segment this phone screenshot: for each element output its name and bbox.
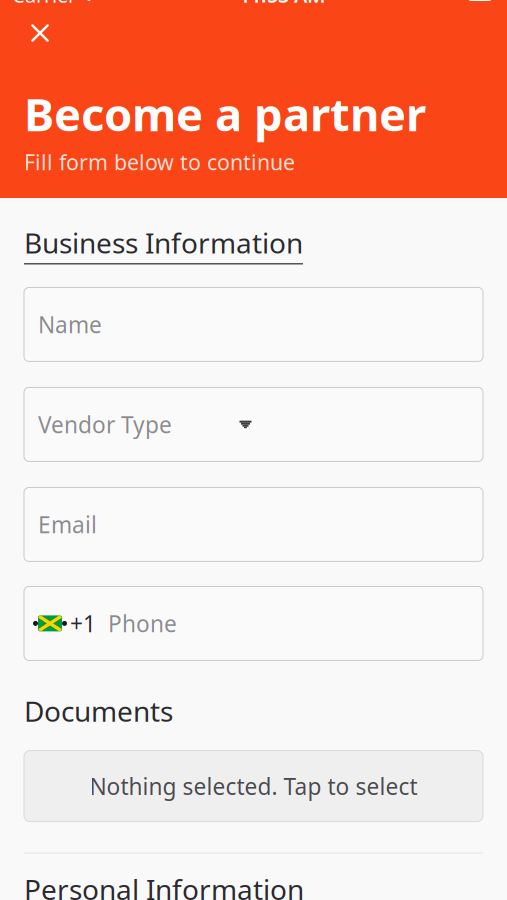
staticText: Fill form below to continue: [24, 148, 295, 176]
staticText: Phone: [108, 608, 177, 638]
staticText: Business Information: [24, 224, 303, 261]
staticText: Email: [38, 509, 97, 539]
staticText: Personal Information: [24, 871, 304, 900]
staticText: 11:53 AM: [239, 0, 326, 8]
button[interactable]: Close: [18, 11, 62, 55]
staticText: Name: [38, 309, 102, 339]
staticText: Carrier: [12, 0, 76, 8]
staticText: Nothing selected. Tap to select: [89, 771, 417, 801]
staticText: Vendor Type: [38, 409, 172, 439]
staticText: Documents: [24, 692, 173, 730]
button[interactable]: Name: [24, 287, 483, 361]
staticText: Become a partner: [24, 83, 426, 144]
button[interactable]: +1: [24, 586, 483, 660]
button[interactable]: Nothing selected. Tap to select: [24, 751, 483, 822]
button[interactable]: Vendor Type: [24, 387, 483, 461]
staticText: +1: [70, 608, 96, 638]
button[interactable]: Email: [24, 487, 483, 561]
